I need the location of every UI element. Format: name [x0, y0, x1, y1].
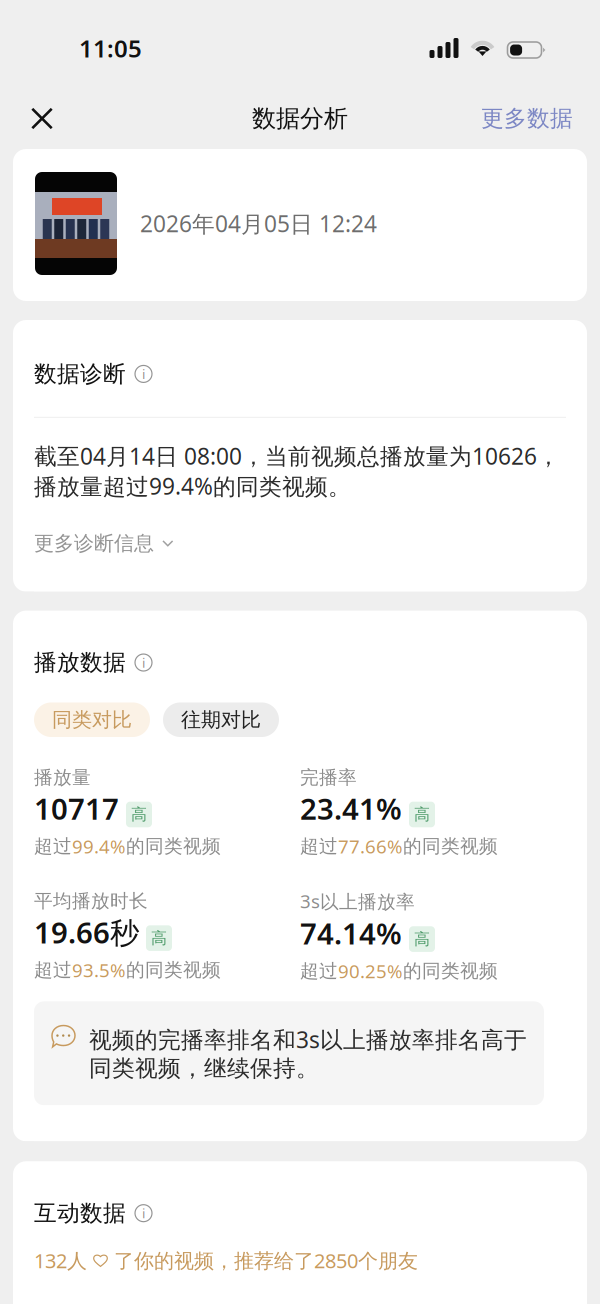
staticText: 截至04月14日 08:00，当前视频总播放量为10626，播放量超过99.4%…: [34, 441, 560, 501]
button[interactable]: 同类对比: [34, 702, 150, 737]
button[interactable]: 往期对比: [163, 702, 279, 737]
staticText: 10717: [34, 789, 119, 828]
staticText: 高: [151, 928, 167, 948]
staticText: 同类对比: [52, 707, 132, 732]
staticText: 完播率: [300, 766, 357, 789]
staticText: 更多诊断信息: [34, 531, 154, 556]
staticText: 播放量: [34, 766, 91, 789]
staticText: 的同类视频: [403, 835, 498, 858]
staticText: 19.66秒: [34, 913, 139, 952]
button[interactable]: 关闭: [21, 97, 63, 139]
staticText: 数据诊断: [34, 360, 126, 388]
staticText: 超过: [300, 959, 338, 982]
staticText: 的同类视频: [126, 958, 221, 981]
staticText: i: [142, 1204, 145, 1222]
staticText: 播放数据: [34, 649, 126, 676]
staticText: i: [142, 654, 145, 671]
staticText: 99.4%: [72, 834, 126, 859]
staticText: 11:05: [79, 32, 142, 64]
staticText: 3s以上播放率: [300, 889, 415, 914]
staticText: 高: [131, 805, 147, 824]
button[interactable]: 2026年04月05日 12:24: [13, 149, 587, 301]
staticText: 93.5%: [72, 958, 126, 982]
staticText: 互动数据: [34, 1199, 126, 1227]
staticText: 的同类视频: [126, 835, 221, 858]
staticText: 74.14%: [300, 914, 402, 953]
staticText: 90.25%: [338, 958, 403, 983]
staticText: 高: [414, 929, 430, 949]
staticText: 平均播放时长: [34, 890, 148, 913]
staticText: 超过: [34, 958, 72, 981]
staticText: 23.41%: [300, 789, 402, 828]
staticText: i: [142, 365, 145, 383]
staticText: 超过: [300, 835, 338, 858]
staticText: 132人: [34, 1247, 93, 1274]
staticText: 更多数据: [481, 105, 573, 132]
staticText: 数据分析: [252, 104, 348, 133]
staticText: 的同类视频: [403, 959, 498, 982]
staticText: 2026年04月05日 12:24: [140, 208, 377, 238]
button[interactable]: 更多数据: [475, 97, 579, 140]
staticText: 往期对比: [181, 707, 261, 732]
staticText: 了你的视频，推荐给了2850个朋友: [108, 1247, 418, 1274]
staticText: 77.66%: [338, 834, 403, 859]
staticText: 视频的完播率排名和3s以上播放率排名高于同类视频，继续保持。: [89, 1024, 527, 1082]
staticText: 高: [414, 805, 430, 824]
button[interactable]: 更多诊断信息: [34, 525, 566, 562]
staticText: 超过: [34, 835, 72, 858]
